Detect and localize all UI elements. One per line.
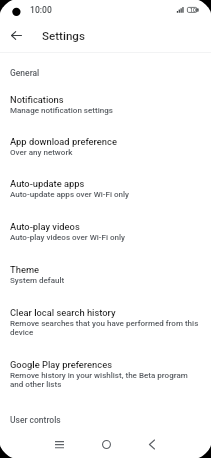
staticText: 10:00 <box>30 5 52 15</box>
button[interactable]: App download preference <box>0 133 211 159</box>
staticText: Theme <box>10 264 40 275</box>
staticText: System default <box>10 276 65 285</box>
staticText: App download preference <box>10 136 117 147</box>
button[interactable]: Clear local search history <box>0 304 211 339</box>
button[interactable]: Notifications <box>0 91 211 117</box>
staticText: Remove searches that you have performed … <box>10 319 201 337</box>
staticText: Auto-update apps <box>10 178 85 189</box>
staticText: Remove history in your wishlist, the Bet… <box>10 371 201 389</box>
button[interactable]: Back <box>134 426 170 458</box>
staticText: Settings <box>42 29 85 43</box>
staticText: General <box>10 68 40 78</box>
staticText: Over any network <box>10 148 73 157</box>
button[interactable]: Auto-update apps <box>0 175 211 201</box>
button[interactable]: Theme <box>0 261 211 287</box>
staticText: Auto-update apps over Wi-Fi only <box>10 190 130 199</box>
staticText: Notifications <box>10 94 64 105</box>
staticText: Auto-play videos <box>10 221 80 232</box>
staticText: Google Play preferences <box>10 359 112 370</box>
staticText: Manage notification settings <box>10 106 113 115</box>
button[interactable]: Auto-play videos <box>0 218 211 244</box>
button[interactable]: Navigate up <box>3 22 29 48</box>
button[interactable]: Recent apps <box>41 426 77 458</box>
button[interactable]: Google Play preferences <box>0 356 211 391</box>
button[interactable]: Home <box>88 426 124 458</box>
staticText: 100 <box>190 7 199 13</box>
staticText: Auto-play videos over Wi-Fi only <box>10 233 126 242</box>
staticText: Clear local search history <box>10 307 116 318</box>
staticText: User controls <box>10 415 61 425</box>
